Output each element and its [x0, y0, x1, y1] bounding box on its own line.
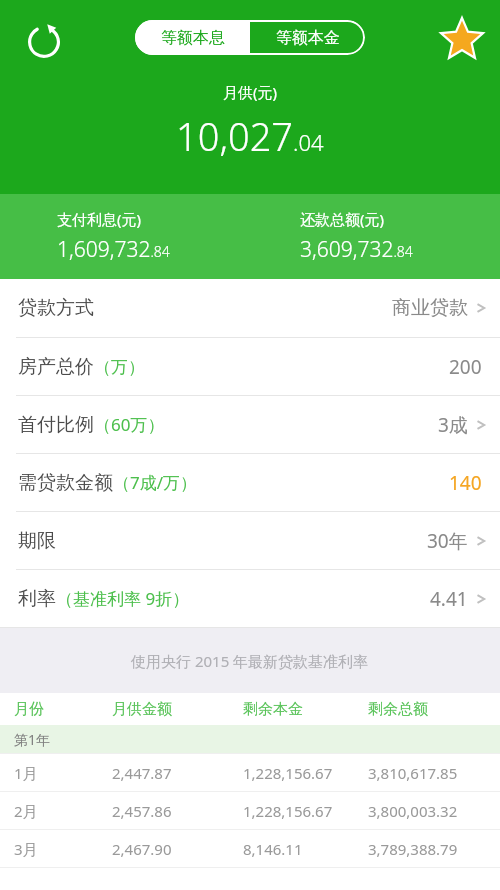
staticText: 房产总价（万）: [18, 355, 145, 379]
staticText: 使用央行 2015 年最新贷款基准利率: [131, 651, 369, 671]
staticText: 第1年: [14, 730, 51, 749]
staticText: 30年: [427, 528, 468, 554]
staticText: 2,447.87: [112, 763, 172, 783]
staticText: 月供金额: [112, 700, 172, 719]
button[interactable]: 期限: [0, 512, 500, 569]
staticText: 月份: [14, 700, 44, 719]
staticText: 3,800,003.32: [368, 801, 458, 821]
button[interactable]: 贷款方式: [0, 279, 500, 337]
staticText: 月供(元): [223, 82, 278, 102]
staticText: 3成: [438, 412, 468, 438]
staticText: 3,810,617.85: [368, 763, 458, 783]
staticText: 2月: [14, 801, 38, 821]
staticText: 1,609,732.84: [57, 235, 170, 264]
staticText: 3,789,388.79: [368, 839, 458, 859]
staticText: 8,146.11: [243, 839, 303, 859]
staticText: 3,609,732.84: [300, 235, 413, 264]
staticText: 期限: [18, 529, 56, 553]
staticText: 等额本息: [161, 28, 225, 48]
staticText: 支付利息(元): [57, 209, 142, 229]
staticText: 4.41: [430, 586, 468, 612]
staticText: 10,027.04: [176, 110, 324, 162]
staticText: 剩余本金: [243, 700, 303, 719]
staticText: 商业贷款: [392, 296, 468, 320]
staticText: 剩余总额: [368, 700, 428, 719]
staticText: 1,228,156.67: [243, 801, 333, 821]
staticText: 1月: [14, 763, 38, 783]
staticText: 3月: [14, 839, 38, 859]
staticText: 等额本金: [276, 28, 340, 48]
button[interactable]: Reset: [20, 17, 68, 65]
button[interactable]: 需贷款金额（7成/万）: [0, 454, 500, 511]
staticText: 1,228,156.67: [243, 763, 333, 783]
button[interactable]: 等额本息: [135, 20, 250, 55]
staticText: 利率（基准利率 9折）: [18, 587, 190, 611]
staticText: 2,457.86: [112, 801, 172, 821]
button[interactable]: 首付比例（60万）: [0, 396, 500, 453]
staticText: 贷款方式: [18, 296, 94, 320]
staticText: 2,467.90: [112, 839, 172, 859]
button[interactable]: 利率（基准利率 9折）: [0, 570, 500, 627]
staticText: 200: [449, 354, 482, 380]
staticText: 还款总额(元): [300, 209, 385, 229]
button[interactable]: 房产总价（万）: [0, 338, 500, 395]
button[interactable]: Favorite: [438, 16, 486, 64]
staticText: 需贷款金额（7成/万）: [18, 471, 198, 495]
staticText: 140: [449, 470, 482, 496]
staticText: 首付比例（60万）: [18, 413, 165, 437]
button[interactable]: 等额本金: [250, 20, 365, 55]
